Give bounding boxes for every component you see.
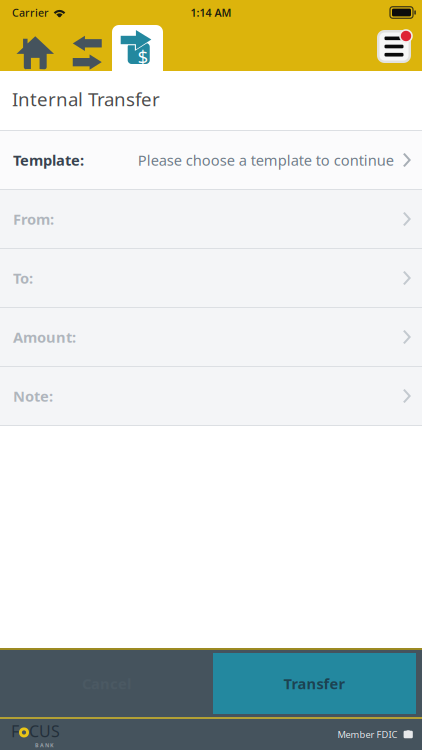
staticText: Transfer <box>283 674 345 693</box>
staticText: B A N K <box>35 742 54 749</box>
button[interactable]: Transfers <box>62 26 112 70</box>
staticText: Carrier <box>12 5 49 20</box>
staticText: To: <box>13 268 33 288</box>
button[interactable]: From: <box>0 190 422 249</box>
staticText: F <box>11 720 19 741</box>
button[interactable]: Note: <box>0 367 422 426</box>
button[interactable]: Internal Transfer <box>112 25 163 71</box>
button[interactable]: Home <box>8 26 62 70</box>
button[interactable]: Template: <box>0 131 422 190</box>
staticText: $ <box>137 44 148 69</box>
button[interactable]: To: <box>0 249 422 308</box>
staticText: Amount: <box>13 327 76 347</box>
staticText: Note: <box>13 386 53 406</box>
button[interactable]: Transfer <box>213 650 422 717</box>
button[interactable]: Amount: <box>0 308 422 367</box>
staticText: Template: <box>13 150 84 170</box>
staticText: Please choose a template to continue <box>138 150 394 170</box>
staticText: From: <box>13 209 54 229</box>
staticText: Internal Transfer <box>12 87 160 111</box>
staticText: Member FDIC <box>337 728 397 741</box>
staticText: CUS <box>29 720 60 741</box>
button[interactable]: Menu <box>377 30 413 66</box>
staticText: 1:14 AM <box>190 5 231 20</box>
